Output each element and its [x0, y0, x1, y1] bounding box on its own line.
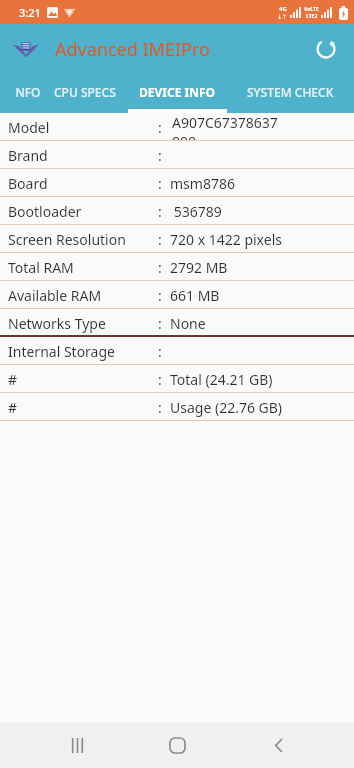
staticText: # [8, 398, 158, 417]
staticText: : [158, 398, 162, 417]
staticText: : [158, 286, 162, 305]
staticText: Total RAM [8, 258, 158, 277]
staticText: Advanced IMEIPro [55, 37, 210, 62]
staticText: LTE2 [306, 13, 318, 20]
button[interactable]: Brand [0, 141, 354, 169]
staticText: 3:21 [19, 5, 41, 20]
staticText: : [158, 230, 162, 249]
staticText: CPU SPECS [54, 84, 116, 100]
staticText: # [8, 370, 158, 389]
staticText: Screen Resolution [8, 230, 158, 249]
staticText: VoLTE [304, 6, 319, 13]
staticText: Model [8, 118, 158, 137]
button[interactable]: NFO [0, 74, 56, 113]
button[interactable]: Home [153, 723, 201, 768]
button[interactable]: Back [254, 723, 302, 768]
staticText: ↓↑ [277, 13, 288, 20]
staticText: 2792 MB [170, 258, 228, 277]
staticText: Total (24.21 GB) [170, 370, 273, 389]
staticText: Brand [8, 146, 158, 165]
button[interactable]: # [0, 365, 354, 393]
button[interactable]: SYSTEM CHECK [227, 74, 354, 113]
staticText: msm8786 [170, 174, 235, 193]
staticText: A907C67378637898 [172, 113, 282, 141]
staticText: SYSTEM CHECK [247, 84, 334, 100]
staticText: : [158, 258, 162, 277]
button[interactable]: Internal Storage [0, 337, 354, 365]
button[interactable]: Refresh [307, 30, 345, 68]
button[interactable]: Screen Resolution [0, 225, 354, 253]
staticText: : [158, 146, 162, 165]
staticText: Usage (22.76 GB) [170, 398, 283, 417]
staticText: 4G [279, 5, 287, 13]
staticText: 720 x 1422 pixels [170, 230, 282, 249]
staticText: : [158, 118, 162, 137]
staticText: 661 MB [170, 286, 220, 305]
staticText: 536789 [170, 202, 222, 221]
staticText: : [158, 370, 162, 389]
button[interactable]: Bootloader [0, 197, 354, 225]
button[interactable]: Networks Type [0, 309, 354, 337]
button[interactable]: Total RAM [0, 253, 354, 281]
staticText: Internal Storage [8, 342, 158, 361]
staticText: NFO [15, 84, 41, 100]
staticText: : [158, 314, 162, 333]
button[interactable]: CPU SPECS [42, 74, 128, 113]
button[interactable]: DEVICE INFO [128, 74, 227, 113]
button[interactable]: Model [0, 113, 354, 141]
staticText: : [158, 342, 162, 361]
button[interactable]: Recent apps [53, 723, 101, 768]
staticText: Bootloader [8, 202, 158, 221]
button[interactable]: # [0, 393, 354, 421]
staticText: None [170, 314, 206, 333]
staticText: : [158, 202, 162, 221]
button[interactable]: Board [0, 169, 354, 197]
staticText: Board [8, 174, 158, 193]
staticText: Available RAM [8, 286, 158, 305]
button[interactable]: Available RAM [0, 281, 354, 309]
staticText: DEVICE INFO [139, 84, 216, 100]
staticText: Networks Type [8, 314, 158, 333]
staticText: : [158, 174, 162, 193]
